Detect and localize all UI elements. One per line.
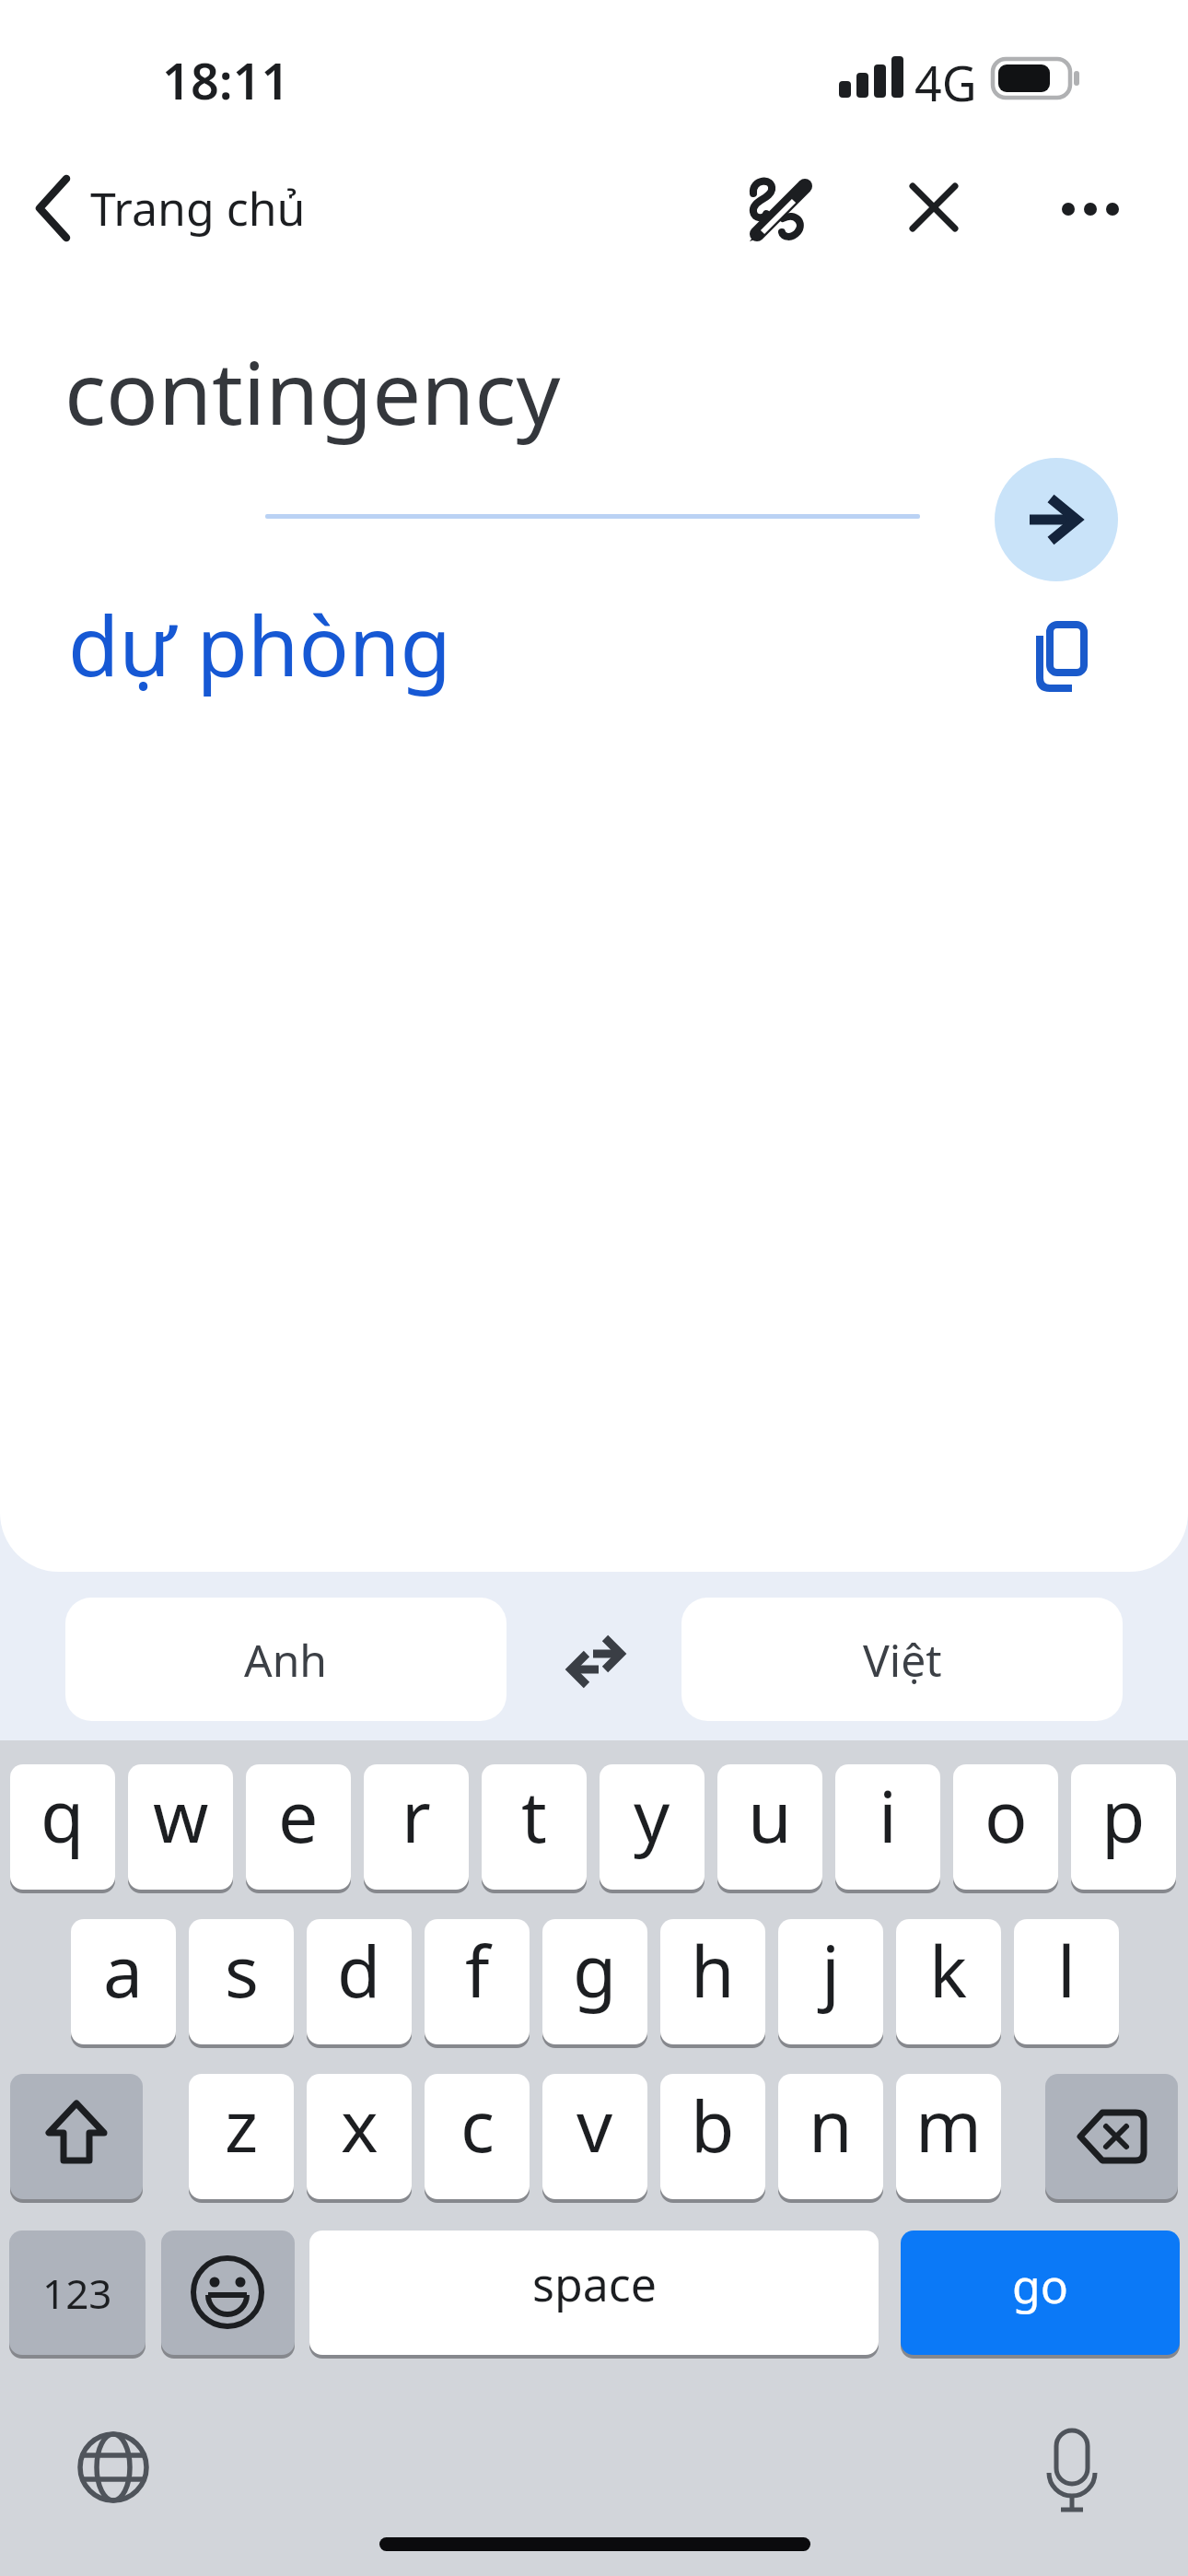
staticText: i: [879, 1767, 897, 1864]
button[interactable]: [77, 2431, 149, 2503]
button[interactable]: [742, 175, 812, 245]
button[interactable]: [1045, 2074, 1178, 2199]
button[interactable]: Việt: [681, 1598, 1123, 1721]
staticText: v: [577, 2077, 613, 2173]
button[interactable]: go: [901, 2231, 1180, 2355]
button[interactable]: h: [660, 1919, 765, 2044]
staticText: 4G: [914, 50, 977, 105]
staticText: e: [278, 1767, 319, 1864]
button[interactable]: k: [896, 1919, 1001, 2044]
button[interactable]: w: [128, 1764, 233, 1890]
button[interactable]: u: [717, 1764, 822, 1890]
button[interactable]: e: [246, 1764, 351, 1890]
button[interactable]: Trang chủ: [18, 166, 322, 251]
button[interactable]: [560, 1629, 626, 1688]
staticText: a: [103, 1922, 144, 2019]
staticText: m: [915, 2077, 982, 2173]
button[interactable]: z: [189, 2074, 294, 2199]
staticText: d: [337, 1922, 381, 2019]
button[interactable]: [910, 183, 958, 231]
staticText: f: [465, 1922, 490, 2019]
staticText: Anh: [244, 1630, 328, 1690]
staticText: q: [41, 1767, 85, 1864]
staticText: b: [691, 2077, 735, 2173]
button[interactable]: s: [189, 1919, 294, 2044]
staticText: z: [225, 2077, 259, 2173]
staticText: g: [573, 1922, 617, 2019]
staticText: dự phòng: [68, 588, 451, 701]
staticText: o: [984, 1767, 1028, 1864]
button[interactable]: y: [600, 1764, 705, 1890]
button[interactable]: Anh: [65, 1598, 507, 1721]
button[interactable]: b: [660, 2074, 765, 2199]
staticText: r: [402, 1767, 431, 1864]
button[interactable]: f: [425, 1919, 530, 2044]
button[interactable]: m: [896, 2074, 1001, 2199]
button[interactable]: v: [542, 2074, 647, 2199]
button[interactable]: g: [542, 1919, 647, 2044]
button[interactable]: [161, 2231, 295, 2355]
button[interactable]: l: [1014, 1919, 1119, 2044]
button[interactable]: 123: [9, 2231, 146, 2355]
staticText: 123: [42, 2266, 112, 2321]
button[interactable]: [1059, 189, 1122, 229]
staticText: Việt: [863, 1630, 942, 1690]
staticText: t: [521, 1767, 547, 1864]
button[interactable]: x: [307, 2074, 412, 2199]
staticText: space: [532, 2253, 657, 2315]
staticText: go: [1012, 2254, 1068, 2317]
staticText: l: [1057, 1922, 1076, 2019]
staticText: Trang chủ: [90, 177, 306, 240]
staticText: h: [691, 1922, 735, 2019]
staticText: y: [634, 1767, 670, 1864]
button[interactable]: c: [425, 2074, 530, 2199]
staticText: k: [929, 1922, 968, 2019]
staticText: w: [153, 1767, 209, 1864]
button[interactable]: [1028, 614, 1089, 693]
staticText: n: [809, 2077, 853, 2173]
button[interactable]: j: [778, 1919, 883, 2044]
button[interactable]: [995, 458, 1118, 581]
staticText: c: [460, 2077, 495, 2173]
button[interactable]: r: [364, 1764, 469, 1890]
staticText: j: [821, 1922, 840, 2019]
button[interactable]: q: [10, 1764, 115, 1890]
button[interactable]: [1041, 2427, 1103, 2515]
button[interactable]: space: [309, 2231, 879, 2355]
button[interactable]: o: [953, 1764, 1058, 1890]
staticText: contingency: [64, 333, 561, 451]
staticText: p: [1101, 1767, 1146, 1864]
staticText: x: [341, 2077, 379, 2173]
button[interactable]: n: [778, 2074, 883, 2199]
staticText: 18:11: [162, 46, 290, 105]
staticText: u: [748, 1767, 792, 1864]
button[interactable]: i: [835, 1764, 940, 1890]
button[interactable]: a: [71, 1919, 176, 2044]
button[interactable]: d: [307, 1919, 412, 2044]
staticText: s: [225, 1922, 259, 2019]
button[interactable]: p: [1071, 1764, 1176, 1890]
button[interactable]: [10, 2074, 143, 2199]
button[interactable]: t: [482, 1764, 587, 1890]
